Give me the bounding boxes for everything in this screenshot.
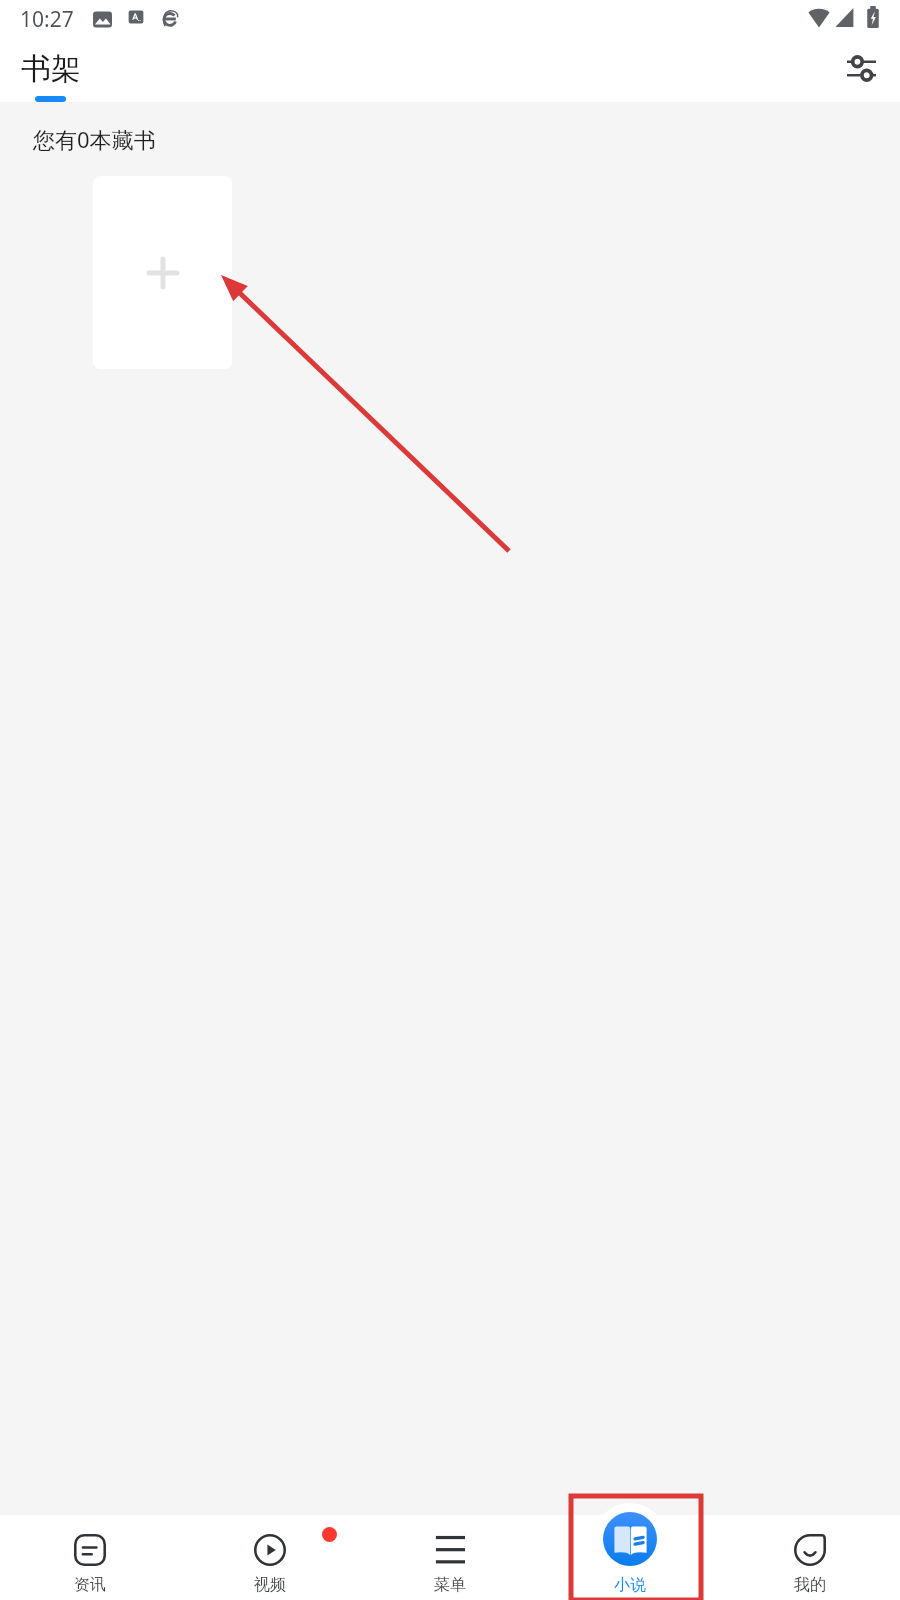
staticText: 10:27	[20, 5, 74, 34]
staticText: 视频	[254, 1575, 286, 1595]
button[interactable]: 小说	[540, 1491, 720, 1600]
staticText: 书架	[21, 50, 81, 88]
button[interactable]: 资讯	[0, 1515, 180, 1600]
staticText: 资讯	[74, 1575, 106, 1595]
button[interactable]: 视频	[180, 1515, 360, 1600]
button[interactable]: 添加书籍	[93, 176, 232, 369]
staticText: 菜单	[434, 1575, 466, 1595]
staticText: 小说	[614, 1575, 646, 1595]
button[interactable]: 菜单	[360, 1515, 540, 1600]
staticText: 我的	[794, 1575, 826, 1595]
staticText: 您有0本藏书	[33, 124, 156, 154]
button[interactable]: 我的	[720, 1515, 900, 1600]
button[interactable]: 设置	[838, 45, 884, 91]
